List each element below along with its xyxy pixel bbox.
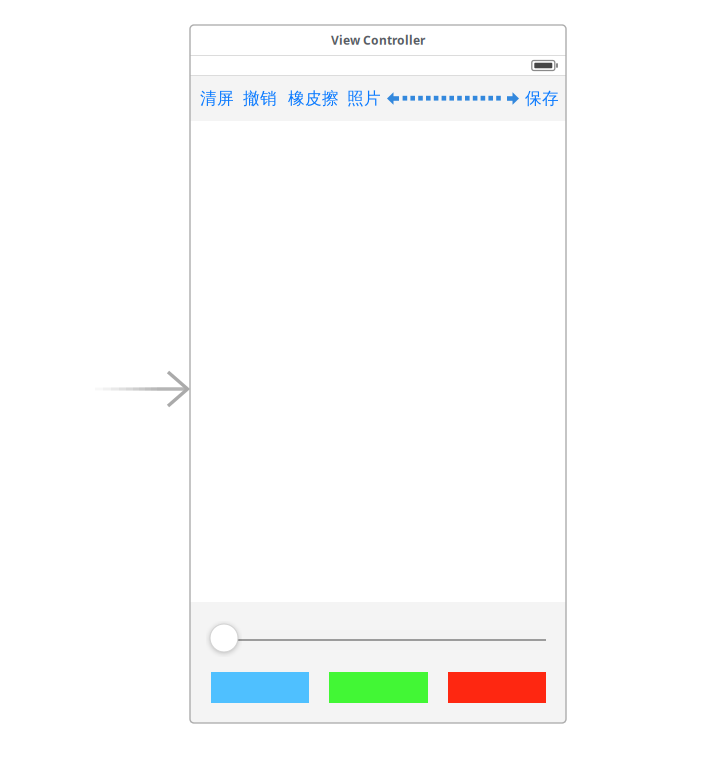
button[interactable]: 撤销: [243, 76, 277, 121]
staticText: 撤销: [243, 88, 277, 109]
staticText: 保存: [525, 88, 559, 109]
staticText: 照片: [347, 88, 381, 109]
button[interactable]: 橡皮擦: [288, 76, 339, 121]
staticText: 橡皮擦: [288, 88, 339, 109]
staticText: 清屏: [200, 88, 234, 109]
button[interactable]: 清屏: [200, 76, 234, 121]
staticText: View Controller: [331, 32, 425, 48]
button[interactable]: 保存: [525, 76, 559, 121]
button[interactable]: 照片: [347, 76, 381, 121]
